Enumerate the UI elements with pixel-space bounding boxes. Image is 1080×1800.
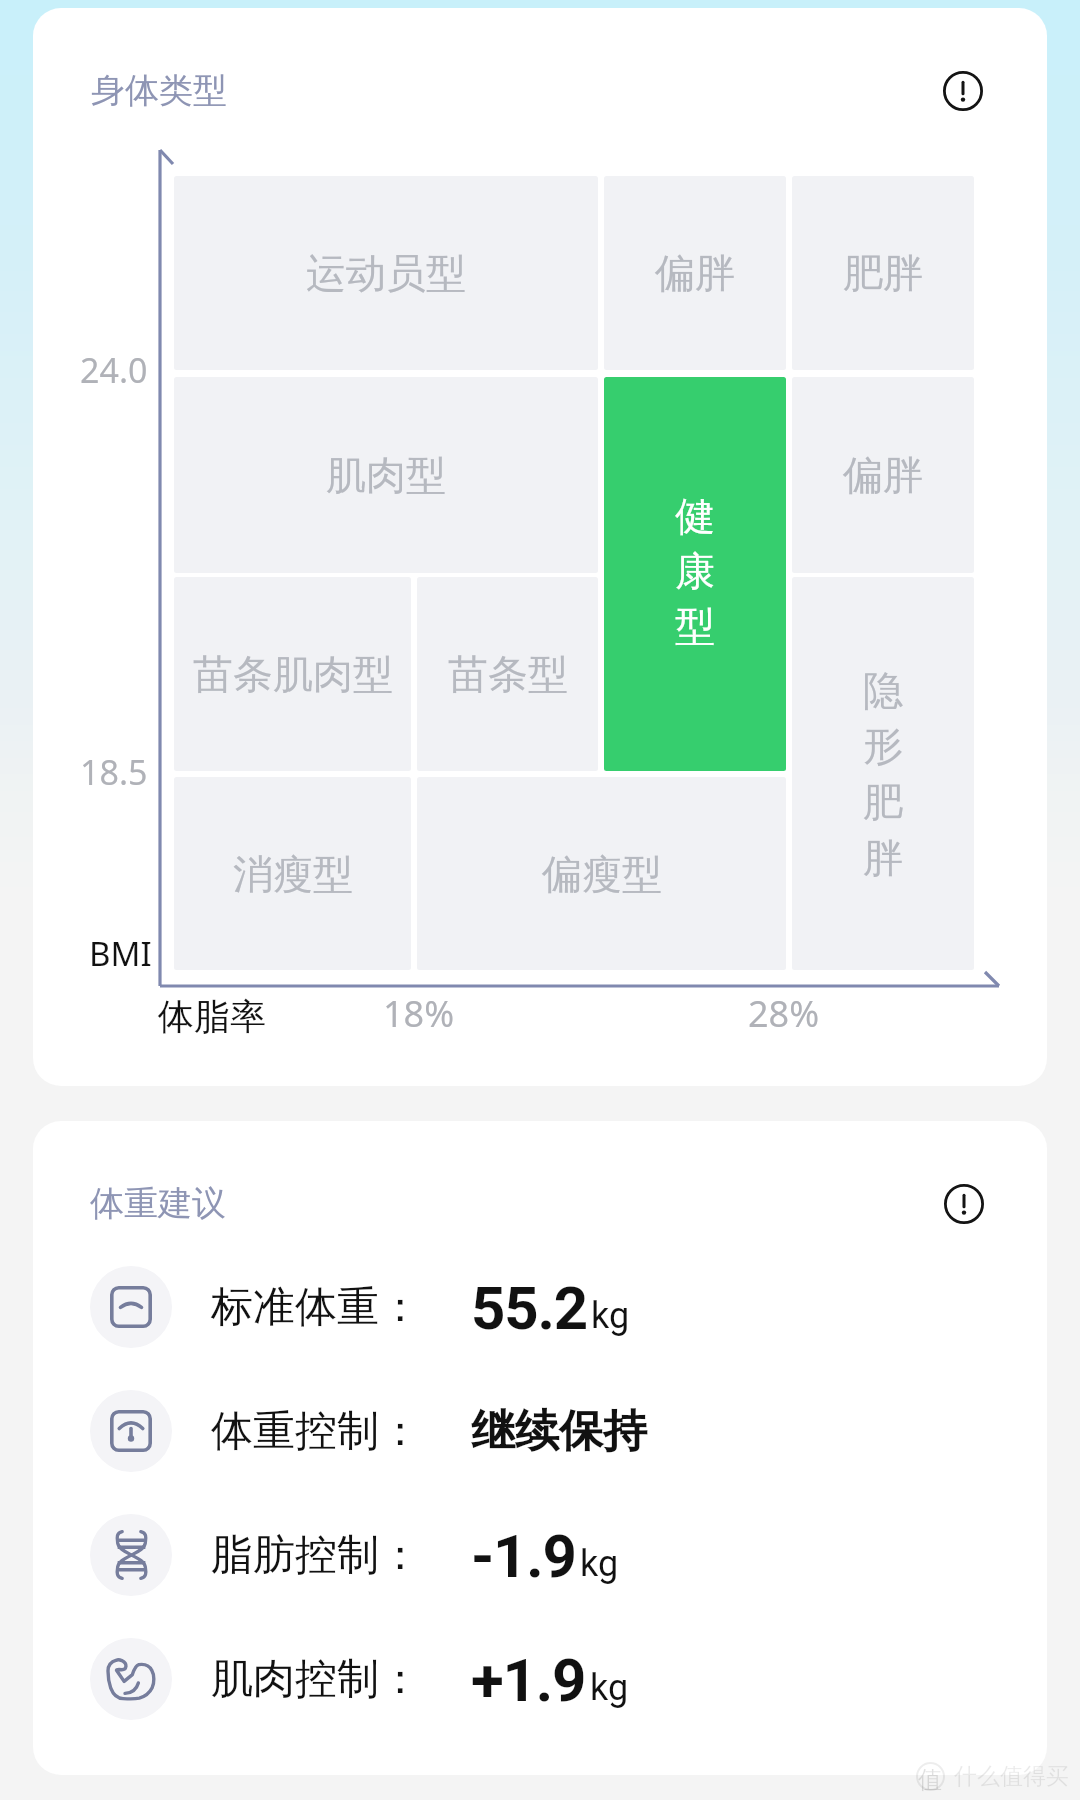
staticText: 肥 — [863, 777, 903, 827]
staticText: 偏胖 — [655, 248, 735, 298]
staticText: 24.0 — [80, 347, 148, 393]
staticText: 型 — [675, 601, 715, 651]
staticText: 体重建议 — [90, 1182, 226, 1225]
staticText: 康 — [675, 546, 715, 596]
staticText: 偏胖 — [843, 450, 923, 500]
staticText: 形 — [863, 721, 903, 771]
staticText: kg — [580, 1543, 619, 1585]
staticText: 肌肉型 — [326, 450, 446, 500]
staticText: 18.5 — [80, 749, 148, 795]
staticText: 55.2 — [471, 1273, 587, 1341]
staticText: kg — [590, 1667, 629, 1709]
staticText: 健 — [675, 491, 715, 541]
staticText: 脂肪控制： — [211, 1529, 421, 1582]
staticText: 苗条肌肉型 — [193, 649, 393, 699]
button[interactable] — [73, 1375, 1007, 1487]
staticText: 消瘦型 — [233, 849, 353, 899]
staticText: 偏瘦型 — [542, 849, 662, 899]
staticText: 继续保持 — [471, 1404, 647, 1459]
button[interactable]: 说明 — [911, 39, 1015, 143]
staticText: 隐 — [863, 665, 903, 715]
staticText: 运动员型 — [306, 248, 466, 298]
staticText: 标准体重： — [211, 1281, 421, 1334]
staticText: kg — [591, 1295, 630, 1337]
staticText: -1.9 — [471, 1521, 576, 1589]
button[interactable] — [73, 1251, 1007, 1363]
staticText: 肥胖 — [843, 248, 923, 298]
staticText: 肌肉控制： — [211, 1653, 421, 1706]
button[interactable]: 说明 — [912, 1152, 1016, 1256]
staticText: 身体类型 — [91, 69, 227, 112]
staticText: 值 — [918, 1765, 942, 1794]
staticText: 胖 — [863, 833, 903, 883]
staticText: 28% — [748, 989, 820, 1038]
staticText: 什么值得买 — [954, 1762, 1069, 1791]
staticText: BMI — [89, 931, 152, 976]
button[interactable] — [73, 1499, 1007, 1611]
staticText: 苗条型 — [448, 649, 568, 699]
staticText: 18% — [383, 989, 455, 1038]
staticText: +1.9 — [471, 1645, 586, 1713]
staticText: 体重控制： — [211, 1405, 421, 1458]
button[interactable] — [73, 1623, 1007, 1735]
staticText: 体脂率 — [158, 994, 266, 1039]
